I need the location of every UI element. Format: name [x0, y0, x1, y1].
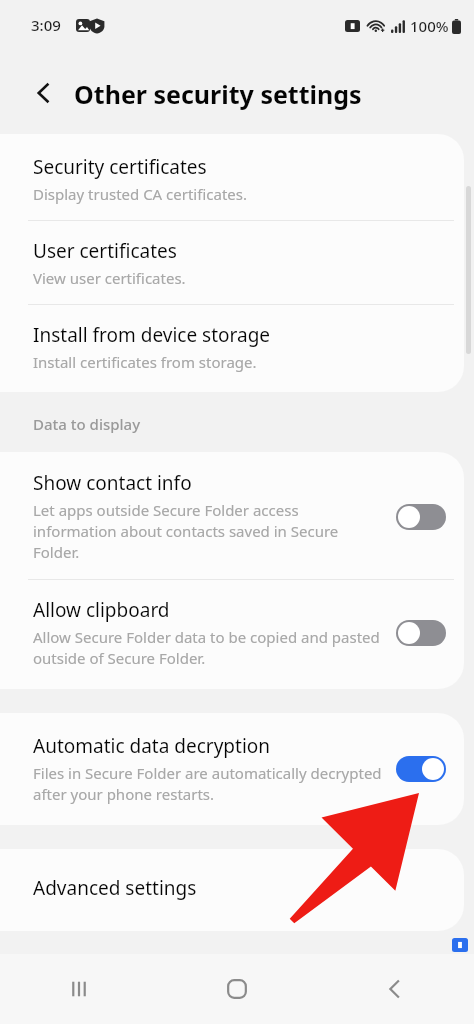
button[interactable]: Security certificates: [0, 134, 464, 220]
staticText: Data to display: [33, 414, 141, 434]
staticText: Let apps outside Secure Folder access in…: [33, 500, 382, 563]
staticText: Advanced settings: [33, 875, 197, 901]
staticText: Show contact info: [33, 470, 192, 496]
button[interactable]: Allow clipboard toggle: [396, 620, 446, 646]
staticText: View user certificates.: [33, 268, 186, 288]
staticText: Allow clipboard: [33, 597, 170, 623]
staticText: 3:09: [31, 15, 61, 35]
button[interactable]: Recents: [0, 954, 158, 1024]
button[interactable]: Install from device storage: [0, 305, 464, 392]
button[interactable]: Allow clipboard: [0, 580, 464, 689]
button[interactable]: Back: [22, 71, 66, 115]
staticText: Security certificates: [33, 154, 207, 180]
staticText: Install certificates from storage.: [33, 352, 257, 372]
staticText: Allow Secure Folder data to be copied an…: [33, 627, 382, 669]
staticText: Install from device storage: [33, 322, 271, 348]
staticText: Other security settings: [74, 77, 362, 111]
staticText: User certificates: [33, 238, 177, 264]
button[interactable]: Automatic data decryption toggle: [396, 756, 446, 782]
staticText: 100%: [410, 16, 449, 36]
staticText: Automatic data decryption: [33, 733, 271, 759]
button[interactable]: Advanced settings: [0, 849, 464, 931]
button[interactable]: Show contact info: [0, 452, 464, 579]
button[interactable]: Home: [158, 954, 316, 1024]
button[interactable]: Automatic data decryption: [0, 713, 464, 825]
staticText: Display trusted CA certificates.: [33, 184, 247, 204]
staticText: Files in Secure Folder are automatically…: [33, 763, 382, 805]
button[interactable]: User certificates: [0, 221, 464, 304]
button[interactable]: Show contact info toggle: [396, 504, 446, 530]
button[interactable]: Back: [316, 954, 474, 1024]
